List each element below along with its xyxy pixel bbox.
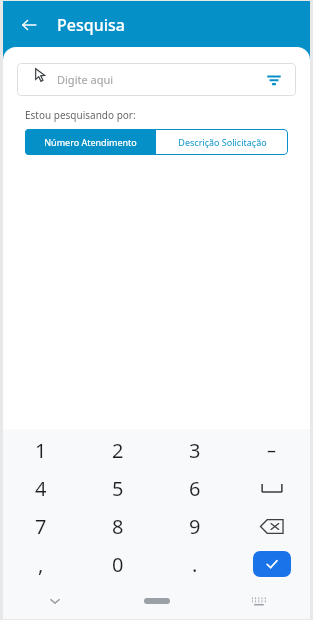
staticText: Estou pesquisando por: — [25, 108, 136, 122]
button[interactable]: 4 — [3, 469, 79, 507]
staticText: 7 — [35, 513, 47, 540]
button[interactable]: 7 — [3, 507, 79, 545]
staticText: 3 — [189, 437, 201, 464]
staticText: . — [192, 551, 198, 578]
button[interactable]: Apagar — [233, 507, 310, 545]
button[interactable]: 5 — [79, 469, 156, 507]
button[interactable]: 8 — [79, 507, 156, 545]
button[interactable]: , — [3, 545, 79, 583]
button[interactable]: Espaço — [233, 469, 310, 507]
button[interactable]: Início — [106, 583, 208, 619]
button[interactable]: 9 — [156, 507, 233, 545]
button[interactable]: Descrição Solicitação — [156, 129, 288, 155]
staticText: 9 — [189, 513, 201, 540]
button[interactable]: Confirmar — [233, 545, 310, 583]
button[interactable]: Trocar teclado — [208, 583, 310, 619]
button[interactable]: Voltar — [11, 7, 47, 43]
staticText: Digite aqui — [57, 72, 114, 87]
staticText: 8 — [112, 513, 124, 540]
button[interactable]: 3 — [156, 432, 233, 469]
staticText: 2 — [112, 437, 124, 464]
button[interactable]: Fechar teclado — [3, 583, 106, 619]
button[interactable]: Traço — [233, 432, 310, 469]
button[interactable]: 0 — [79, 545, 156, 583]
button[interactable]: Número Atendimento — [25, 129, 156, 155]
staticText: Número Atendimento — [44, 136, 137, 148]
staticText: 6 — [189, 475, 201, 502]
button[interactable]: 2 — [79, 432, 156, 469]
staticText: Descrição Solicitação — [178, 136, 267, 148]
staticText: 0 — [112, 551, 124, 578]
button[interactable]: 6 — [156, 469, 233, 507]
staticText: , — [38, 551, 44, 578]
button[interactable]: Filtro — [262, 68, 286, 92]
button[interactable]: Digite aqui — [17, 63, 296, 96]
staticText: 5 — [112, 475, 124, 502]
button[interactable]: . — [156, 545, 233, 583]
button[interactable]: 1 — [3, 432, 79, 469]
staticText: 1 — [35, 437, 47, 464]
staticText: Pesquisa — [57, 14, 125, 36]
staticText: 4 — [35, 475, 47, 502]
staticText: – — [267, 438, 276, 463]
